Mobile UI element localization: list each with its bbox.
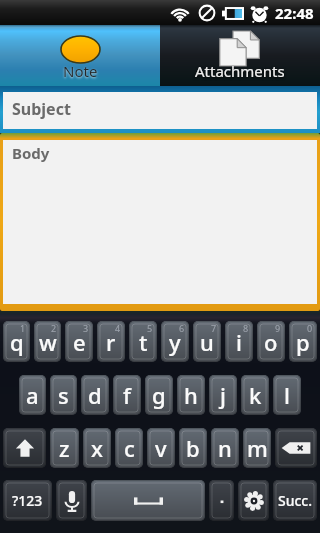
button[interactable]: b — [179, 428, 207, 468]
staticText: a — [26, 380, 39, 410]
staticText: y — [169, 327, 181, 357]
staticText: x — [91, 433, 103, 463]
button[interactable]: s — [50, 375, 77, 415]
staticText: u — [200, 327, 214, 357]
staticText: l — [284, 380, 290, 410]
staticText: 0 — [307, 322, 313, 334]
staticText: j — [220, 380, 226, 410]
staticText: q — [10, 327, 24, 357]
staticText: 1 — [20, 322, 26, 334]
button[interactable]: o — [257, 321, 285, 362]
staticText: 4 — [115, 322, 121, 334]
button[interactable]: n — [211, 428, 239, 468]
staticText: m — [247, 433, 268, 463]
button[interactable]: a — [19, 375, 46, 415]
button[interactable]: m — [243, 428, 271, 468]
button[interactable]: u — [193, 321, 221, 362]
staticText: s — [58, 380, 69, 410]
button[interactable]: p — [289, 321, 317, 362]
staticText: i — [236, 327, 242, 357]
button[interactable]: w — [34, 321, 61, 362]
staticText: Attachments — [195, 61, 285, 81]
button[interactable]: i — [225, 321, 253, 362]
staticText: h — [184, 380, 198, 410]
button[interactable]: h — [177, 375, 205, 415]
staticText: p — [296, 327, 310, 357]
staticText: v — [155, 433, 167, 463]
button[interactable]: r — [97, 321, 125, 362]
button[interactable]: ?123 — [3, 480, 52, 521]
staticText: g — [152, 380, 166, 410]
button[interactable]: Body — [3, 140, 317, 304]
staticText: z — [59, 433, 70, 463]
button[interactable]: Shift — [3, 428, 46, 468]
staticText: 2 — [51, 322, 57, 334]
button[interactable]: t — [129, 321, 157, 362]
button[interactable]: g — [145, 375, 173, 415]
staticText: 22:48 — [275, 3, 314, 23]
button[interactable]: Attachments — [160, 25, 320, 86]
staticText: d — [88, 380, 102, 410]
staticText: ?123 — [12, 491, 43, 510]
staticText: b — [186, 433, 200, 463]
staticText: o — [264, 327, 278, 357]
staticText: e — [73, 327, 86, 357]
button[interactable]: Settings — [238, 480, 269, 521]
staticText: Body — [12, 143, 50, 163]
staticText: w — [39, 327, 57, 357]
button[interactable]: x — [83, 428, 111, 468]
button[interactable]: Subject — [3, 92, 317, 129]
staticText: Note — [63, 61, 98, 81]
staticText: 8 — [243, 322, 249, 334]
button[interactable]: v — [147, 428, 175, 468]
button[interactable]: y — [161, 321, 189, 362]
button[interactable]: k — [241, 375, 269, 415]
button[interactable]: q — [3, 321, 30, 362]
staticText: c — [124, 433, 135, 463]
button[interactable]: e — [65, 321, 93, 362]
button[interactable]: Period — [209, 480, 234, 521]
button[interactable]: Space — [91, 480, 205, 521]
staticText: Succ. — [278, 491, 313, 510]
staticText: Subject — [12, 98, 71, 120]
staticText: f — [123, 380, 131, 410]
staticText: 6 — [179, 322, 185, 334]
button[interactable]: l — [273, 375, 301, 415]
button[interactable]: Note — [0, 25, 160, 86]
staticText: r — [106, 327, 116, 357]
staticText: n — [218, 433, 232, 463]
staticText: 7 — [211, 322, 217, 334]
staticText: 9 — [275, 322, 281, 334]
staticText: 3 — [83, 322, 89, 334]
staticText: t — [139, 327, 148, 357]
staticText: 5 — [147, 322, 153, 334]
button[interactable]: d — [81, 375, 109, 415]
button[interactable]: Succ. — [273, 480, 317, 521]
button[interactable]: Voice input — [56, 480, 87, 521]
staticText: k — [249, 380, 262, 410]
button[interactable]: Backspace — [275, 428, 317, 468]
button[interactable]: z — [50, 428, 79, 468]
button[interactable]: f — [113, 375, 141, 415]
button[interactable]: c — [115, 428, 143, 468]
button[interactable]: j — [209, 375, 237, 415]
